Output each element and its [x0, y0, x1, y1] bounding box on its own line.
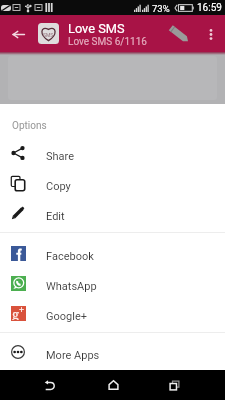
- button[interactable]: Copy: [0, 168, 225, 198]
- staticText: Facebook: [46, 250, 94, 263]
- button[interactable]: WhatsApp: [0, 268, 225, 298]
- staticText: Love SMS: [68, 21, 125, 36]
- staticText: Edit: [46, 210, 65, 223]
- button[interactable]: Recent apps: [159, 370, 189, 400]
- staticText: More Apps: [46, 349, 100, 362]
- staticText: g: [12, 305, 19, 320]
- staticText: +: [19, 305, 25, 316]
- staticText: 16:59: [197, 2, 222, 14]
- staticText: Copy: [46, 180, 71, 193]
- button[interactable]: Back: [35, 370, 65, 400]
- button[interactable]: Back: [0, 16, 36, 52]
- staticText: WhatsApp: [46, 280, 97, 293]
- button[interactable]: g: [0, 298, 225, 328]
- button[interactable]: Home: [98, 370, 128, 400]
- button[interactable]: Edit: [0, 198, 225, 228]
- staticText: Google+: [46, 310, 87, 323]
- button[interactable]: More Apps: [0, 337, 225, 367]
- button[interactable]: More options: [199, 22, 223, 46]
- button[interactable]: Share: [0, 138, 225, 168]
- button[interactable]: Tag: [166, 21, 192, 47]
- staticText: Share: [46, 150, 75, 163]
- staticText: Love SMS 6/1116: [68, 36, 147, 48]
- staticText: Options: [12, 120, 47, 132]
- button[interactable]: Facebook: [0, 238, 225, 268]
- staticText: 73%: [152, 3, 170, 14]
- staticText: SMS: [43, 32, 54, 38]
